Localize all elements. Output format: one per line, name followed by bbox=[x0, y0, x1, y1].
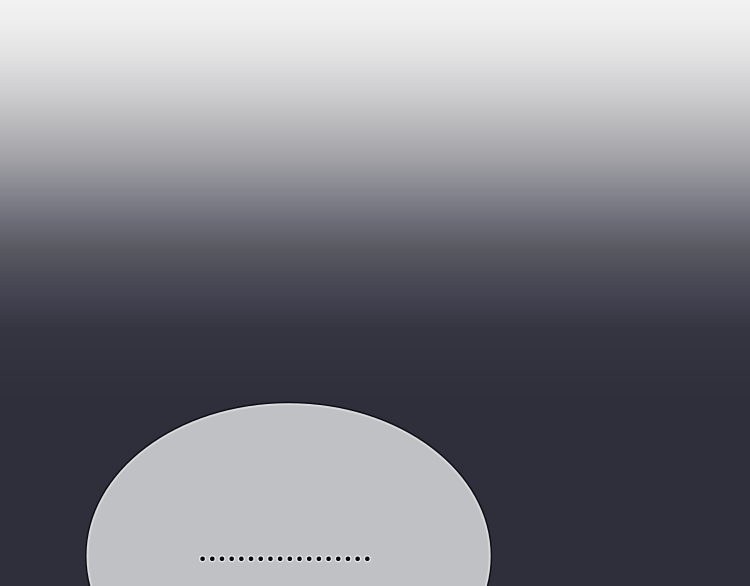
button[interactable]: Speaker bbox=[0, 0, 750, 586]
